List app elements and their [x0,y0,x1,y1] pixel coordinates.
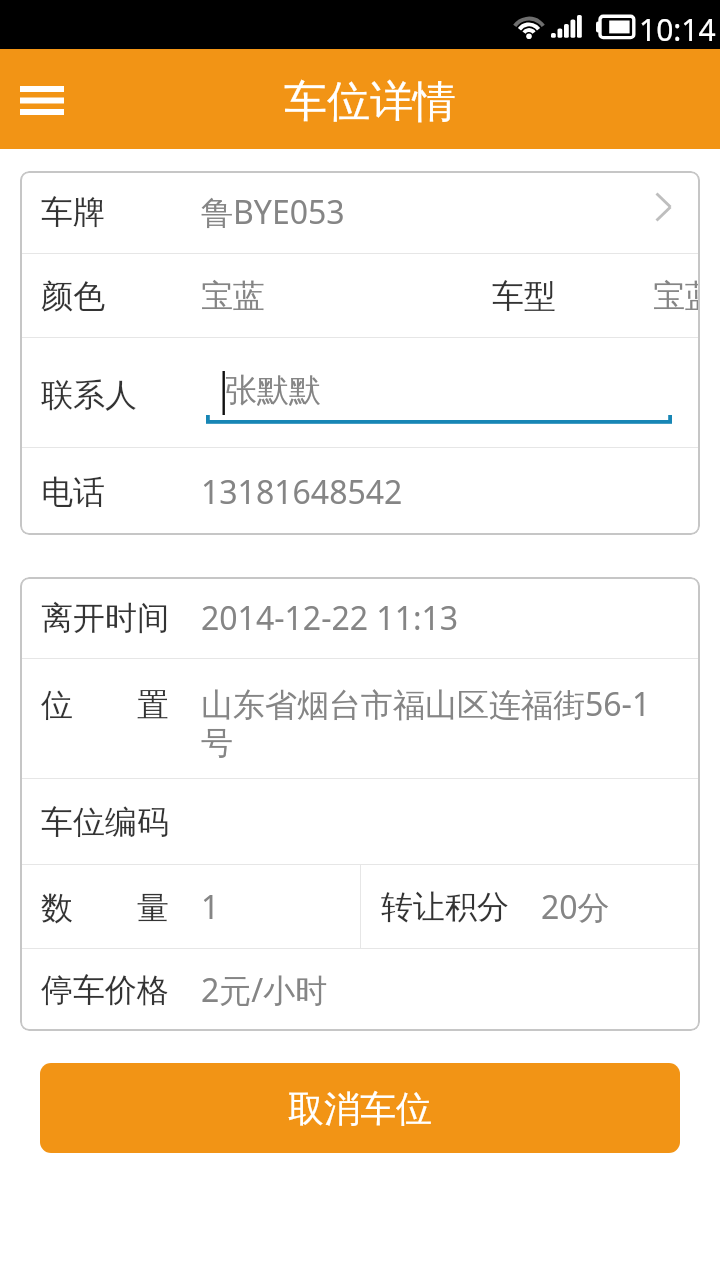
staticText: 2014-12-22 11:13 [201,596,459,640]
staticText: 颜色 [41,276,105,316]
staticText: 联系人 [41,375,137,415]
button[interactable]: 数 量 [20,865,360,948]
button[interactable]: 取消车位 [40,1063,680,1153]
staticText: 车牌 [41,192,105,232]
staticText: 停车价格 [41,970,169,1010]
staticText: 13181648542 [201,470,403,514]
button[interactable]: Open navigation menu [6,63,78,135]
staticText: 车位编码 [41,802,169,842]
staticText: 车位详情 [284,75,456,129]
staticText: 宝蓝 [201,276,265,316]
staticText: 1 [201,885,220,929]
staticText: 数 量 [41,885,169,929]
staticText: 2元/小时 [201,968,328,1012]
staticText: 车型 [492,276,556,316]
button[interactable]: 位 置 [20,659,700,778]
staticText: 20分 [541,885,610,929]
button[interactable]: 停车价格 [20,949,700,1031]
staticText: 转让积分 [381,887,509,927]
staticText: 电话 [41,472,105,512]
button[interactable]: Contact name field [206,338,672,447]
staticText: 山东省烟台市福山区连福街56-1号 [201,682,674,764]
button[interactable]: 转让积分 [361,865,700,948]
staticText: 10:14 [639,9,716,50]
staticText: 位 置 [41,682,169,726]
button[interactable]: 车位编码 [20,779,700,864]
staticText: 取消车位 [288,1086,432,1131]
button[interactable]: 电话 [20,448,700,535]
staticText: 宝蓝 [653,276,700,316]
staticText: 鲁BYE053 [201,190,345,234]
button[interactable]: 颜色 [20,254,700,337]
staticText: 张默默 [225,370,321,410]
button[interactable]: 车牌 [20,171,700,253]
button[interactable]: 离开时间 [20,577,700,658]
staticText: 离开时间 [41,598,169,638]
